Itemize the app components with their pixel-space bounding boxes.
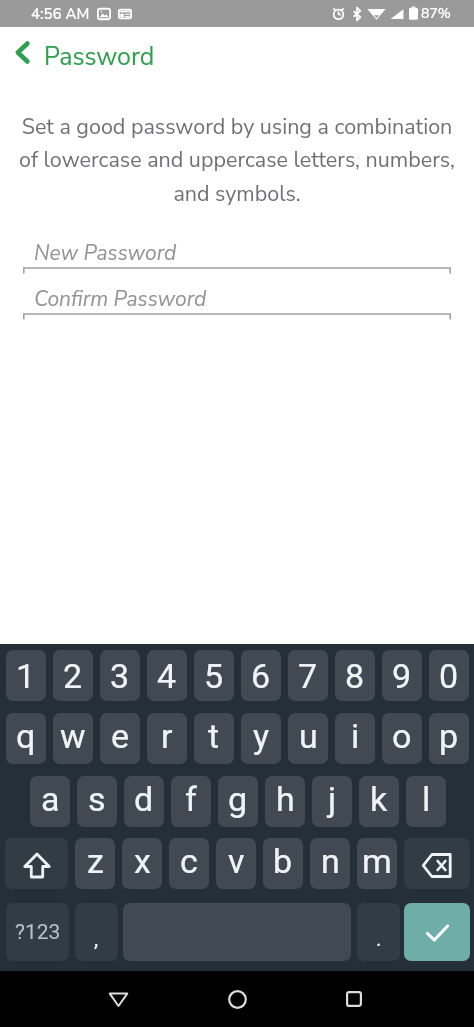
staticText: y <box>253 716 270 756</box>
staticText: o <box>392 716 412 756</box>
staticText: 5 <box>204 656 224 696</box>
button[interactable]: l <box>406 776 446 827</box>
staticText: 2 <box>63 656 83 696</box>
button[interactable]: i <box>335 713 375 764</box>
button[interactable]: Back <box>0 27 45 80</box>
button[interactable]: 9 <box>382 650 422 701</box>
button[interactable]: Recents <box>330 971 378 1027</box>
staticText: New Password <box>34 239 177 268</box>
staticText: 8 <box>345 656 365 696</box>
staticText: h <box>276 779 295 819</box>
button[interactable]: 4 <box>147 650 187 701</box>
staticText: i <box>351 716 360 756</box>
button[interactable]: f <box>171 776 211 827</box>
staticText: n <box>321 841 340 881</box>
staticText: 9 <box>392 656 412 696</box>
staticText: 87% <box>421 4 451 23</box>
button[interactable]: Home <box>213 971 261 1027</box>
staticText: p <box>439 716 459 756</box>
button[interactable]: 3 <box>100 650 140 701</box>
staticText: x <box>134 841 151 881</box>
button[interactable]: c <box>169 838 209 889</box>
staticText: r <box>161 716 173 756</box>
staticText: k <box>370 779 388 819</box>
staticText: Set a good password by using a combinati… <box>14 112 460 208</box>
button[interactable]: Confirm Password <box>23 284 451 324</box>
staticText: g <box>228 779 248 819</box>
staticText: ?123 <box>15 920 61 945</box>
button[interactable]: u <box>288 713 328 764</box>
staticText: v <box>228 841 245 881</box>
button[interactable]: y <box>241 713 281 764</box>
button[interactable]: g <box>218 776 258 827</box>
button[interactable]: Shift <box>5 838 68 889</box>
staticText: z <box>87 841 104 881</box>
button[interactable]: e <box>100 713 140 764</box>
staticText: 4 <box>157 656 177 696</box>
button[interactable]: 6 <box>241 650 281 701</box>
staticText: e <box>111 716 130 756</box>
staticText: m <box>362 841 392 881</box>
button[interactable]: x <box>122 838 162 889</box>
staticText: d <box>134 779 154 819</box>
staticText: b <box>273 841 293 881</box>
button[interactable]: 5 <box>194 650 234 701</box>
button[interactable]: j <box>312 776 352 827</box>
button[interactable]: 2 <box>53 650 93 701</box>
staticText: f <box>185 779 197 819</box>
button[interactable]: o <box>382 713 422 764</box>
staticText: w <box>60 716 86 756</box>
button[interactable]: b <box>263 838 303 889</box>
staticText: s <box>88 779 106 819</box>
staticText: 6 <box>251 656 271 696</box>
staticText: c <box>180 841 198 881</box>
staticText: 1 <box>16 656 36 696</box>
button[interactable]: 7 <box>288 650 328 701</box>
staticText: l <box>422 779 431 819</box>
staticText: 0 <box>439 656 459 696</box>
button[interactable]: ?123 <box>6 903 69 961</box>
button[interactable]: q <box>6 713 46 764</box>
button[interactable]: New Password <box>23 238 451 278</box>
staticText: . <box>376 927 382 952</box>
button[interactable]: z <box>75 838 115 889</box>
button[interactable]: r <box>147 713 187 764</box>
button[interactable]: p <box>429 713 469 764</box>
staticText: t <box>208 716 220 756</box>
button[interactable]: 0 <box>429 650 469 701</box>
button[interactable]: Backspace <box>404 838 470 889</box>
staticText: q <box>16 716 36 756</box>
button[interactable]: s <box>77 776 117 827</box>
button[interactable]: . <box>357 903 400 961</box>
button[interactable]: k <box>359 776 399 827</box>
button[interactable]: Back <box>94 971 142 1027</box>
button[interactable]: a <box>30 776 70 827</box>
button[interactable]: t <box>194 713 234 764</box>
button[interactable]: v <box>216 838 256 889</box>
staticText: u <box>299 716 318 756</box>
staticText: , <box>94 927 99 952</box>
staticText: Confirm Password <box>34 285 207 314</box>
button[interactable]: 1 <box>6 650 46 701</box>
button[interactable]: Enter <box>404 903 470 961</box>
staticText: Password <box>44 40 155 74</box>
button[interactable]: m <box>357 838 397 889</box>
button[interactable]: h <box>265 776 305 827</box>
staticText: 7 <box>298 656 318 696</box>
staticText: 4:56 AM <box>31 4 90 24</box>
button[interactable]: w <box>53 713 93 764</box>
button[interactable]: , <box>75 903 118 961</box>
button[interactable]: n <box>310 838 350 889</box>
staticText: a <box>41 779 60 819</box>
button[interactable]: d <box>124 776 164 827</box>
staticText: j <box>328 779 337 819</box>
button[interactable]: 8 <box>335 650 375 701</box>
staticText: 3 <box>110 656 130 696</box>
